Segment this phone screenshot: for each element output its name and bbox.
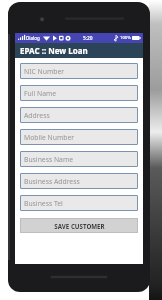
button[interactable]: Address (20, 107, 138, 123)
staticText: Business Address (24, 177, 80, 186)
staticText: Business Tel (24, 199, 63, 208)
staticText: Business Name (24, 155, 74, 164)
button[interactable]: Business Address (20, 173, 138, 189)
staticText: SAVE CUSTOMER (54, 222, 105, 230)
staticText: Address (24, 111, 50, 120)
staticText: EPAC :: New Loan (20, 45, 88, 56)
button[interactable]: NIC Number (20, 63, 138, 79)
staticText: Dialog (26, 35, 40, 41)
staticText: NIC Number (24, 67, 65, 76)
button[interactable]: Business Tel (20, 195, 138, 211)
button[interactable]: Mobile Number (20, 129, 138, 145)
staticText: 5:20 (83, 35, 93, 42)
button[interactable]: Business Name (20, 151, 138, 167)
button[interactable]: Save customer (20, 218, 138, 233)
staticText: 100% (120, 35, 131, 41)
button[interactable]: Full Name (20, 85, 138, 101)
staticText: Full Name (24, 89, 57, 98)
staticText: Mobile Number (24, 133, 75, 142)
